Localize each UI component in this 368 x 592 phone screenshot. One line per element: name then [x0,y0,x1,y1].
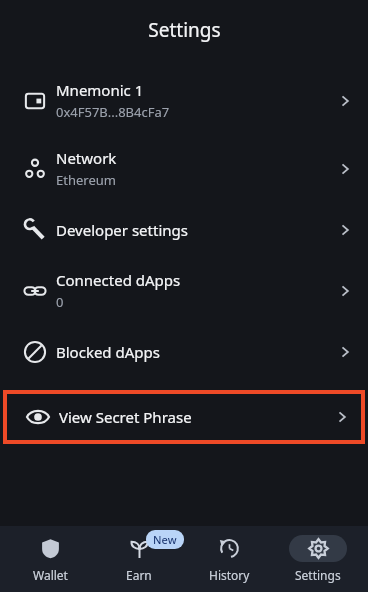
staticText: Blocked dApps [56,342,160,362]
staticText: Connected dApps [56,270,181,290]
staticText: Network [56,148,117,168]
button[interactable]: History [190,526,268,592]
button[interactable]: View Secret Phrase [3,390,365,444]
staticText: View Secret Phrase [59,407,192,427]
staticText: New [153,532,177,547]
button[interactable]: Developer settings [0,206,368,254]
staticText: Mnemonic 1 [56,80,144,100]
staticText: Developer settings [56,220,188,240]
button[interactable]: Blocked dApps [0,328,368,376]
button[interactable]: Mnemonic 1 [0,72,368,128]
button[interactable]: New [100,526,178,592]
staticText: Settings [295,567,341,583]
staticText: Settings [148,17,221,43]
button[interactable]: Connected dApps [0,262,368,318]
button[interactable]: Wallet [11,526,89,592]
staticText: History [209,567,250,583]
button[interactable]: Settings [279,526,357,592]
staticText: Ethereum [56,171,116,189]
staticText: Earn [126,567,152,583]
staticText: 0 [56,293,64,311]
staticText: Wallet [33,567,68,583]
button[interactable]: Network [0,140,368,196]
staticText: 0x4F57B...8B4cFa7 [56,103,170,121]
